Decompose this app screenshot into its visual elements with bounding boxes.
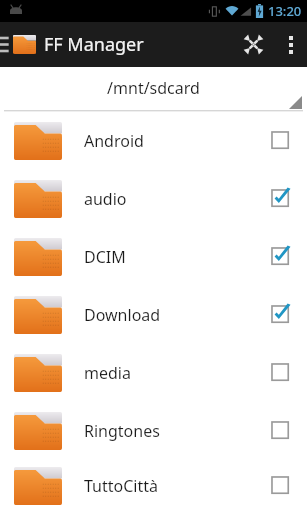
staticText: DCIM [84,246,259,268]
staticText: TuttoCittà [84,475,259,497]
button[interactable]: Ringtones [0,402,307,460]
staticText: FF Manager [44,32,144,57]
button[interactable]: Open navigation drawer [0,22,14,67]
button[interactable]: /mnt/sdcard [0,67,307,112]
button[interactable]: Selected Download [259,286,303,344]
button[interactable]: Select Ringtones [259,402,303,460]
staticText: media [84,362,259,384]
button[interactable]: media [0,344,307,402]
button[interactable]: Selected audio [259,170,303,228]
button[interactable]: Android [0,112,307,170]
button[interactable]: More options [275,22,307,67]
button[interactable]: audio [0,170,307,228]
button[interactable]: Download [0,286,307,344]
staticText: /mnt/sdcard [107,77,200,99]
staticText: audio [84,188,259,210]
button[interactable]: Select media [259,344,303,402]
button[interactable]: Collapse all [231,22,275,67]
staticText: 13:20 [268,2,302,20]
staticText: Download [84,304,259,326]
button[interactable]: Selected DCIM [259,228,303,286]
button[interactable]: DCIM [0,228,307,286]
button[interactable]: Select Android [259,112,303,170]
button[interactable]: TuttoCittà [0,460,307,512]
staticText: Android [84,130,259,152]
button[interactable]: Select TuttoCittà [259,460,303,512]
button[interactable]: FF Manager [13,32,144,57]
staticText: Ringtones [84,420,259,442]
